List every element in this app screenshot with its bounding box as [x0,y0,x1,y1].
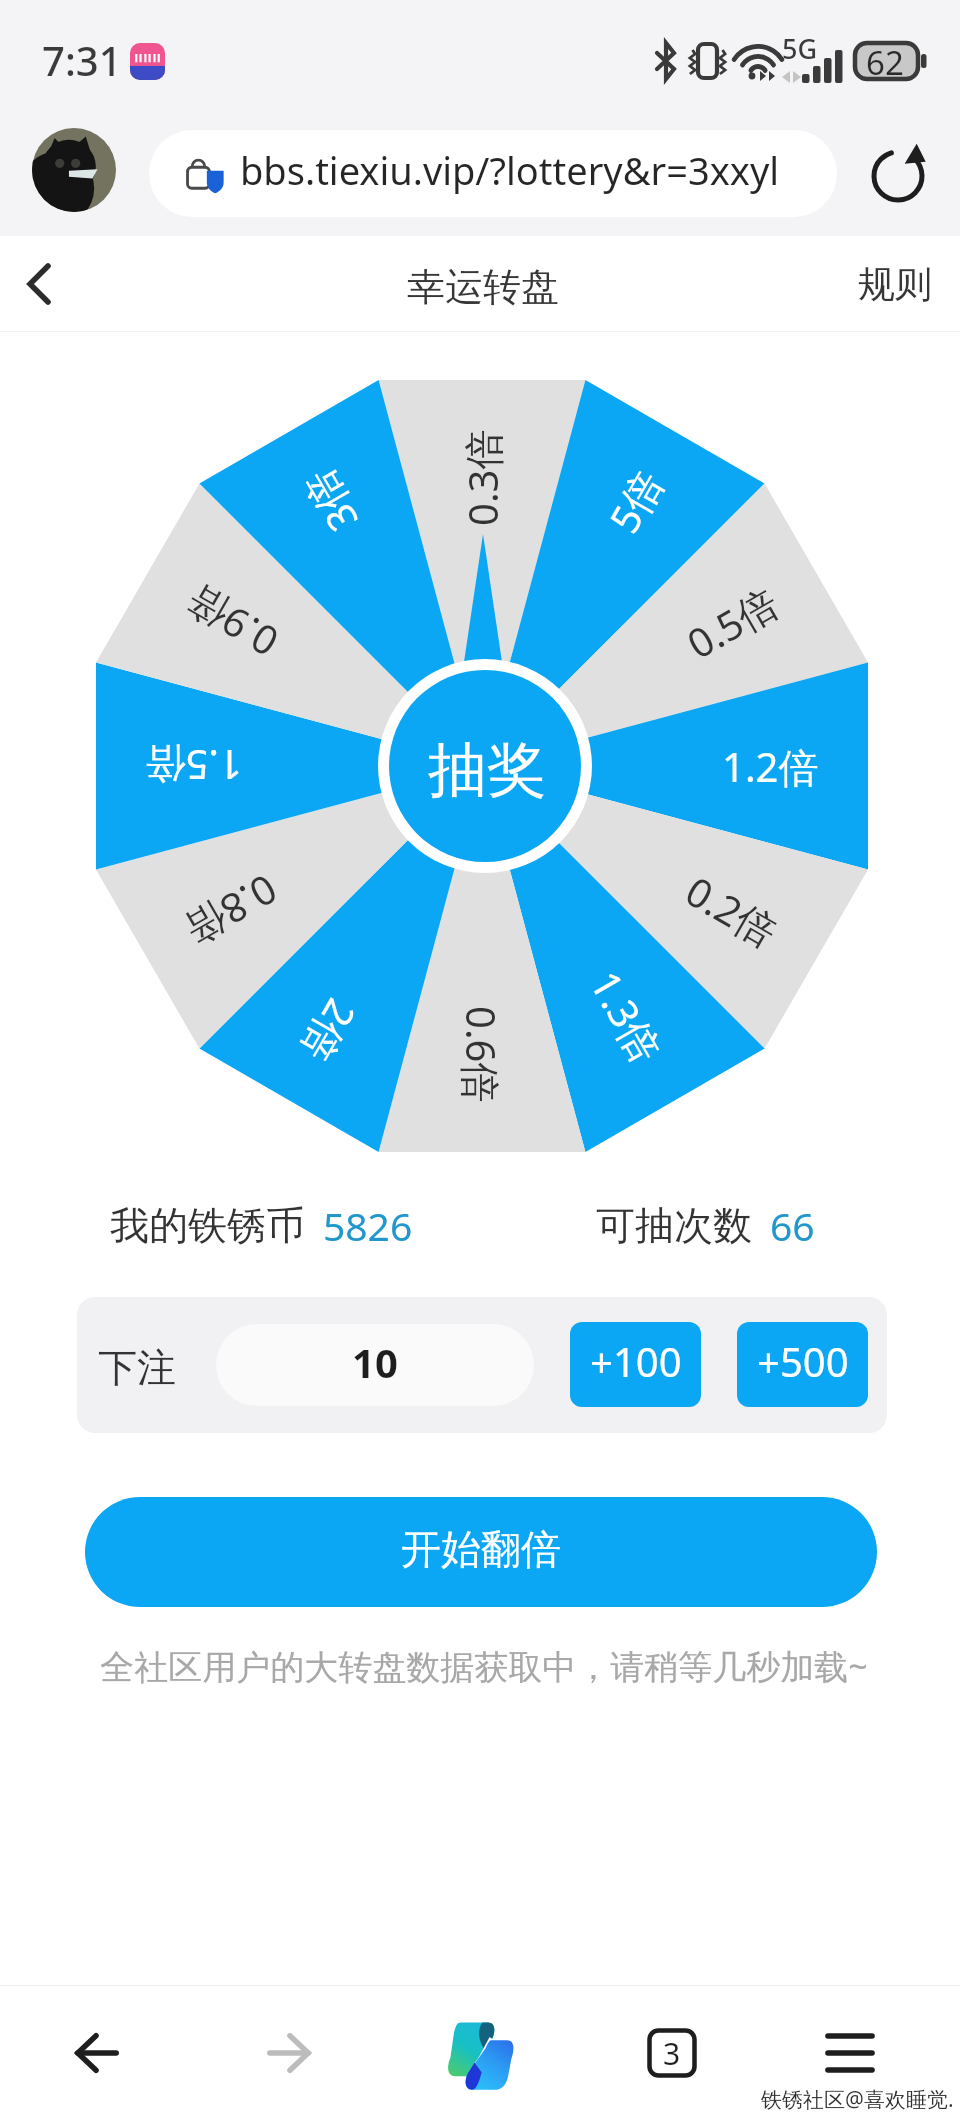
staticText: 0.5倍 [677,575,788,671]
staticText: 1.5倍 [145,738,242,793]
staticText: 全社区用户的大转盘数据获取中，请稍等几秒加载~ [100,1643,868,1689]
staticText: 7:31 [42,33,122,87]
button[interactable]: bbs.tiexiu.vip/?lottery&r=3xxyl [149,130,837,217]
button[interactable]: 抽奖 [389,670,581,862]
button[interactable]: Menu [802,2005,898,2101]
staticText: 66 [770,1199,815,1252]
staticText: 5826 [323,1199,413,1252]
staticText: 0.3倍 [455,429,510,526]
staticText: 2倍 [290,990,369,1072]
staticText: 1.3倍 [578,961,674,1072]
staticText: 铁锈社区@喜欢睡觉. [761,2085,954,2114]
staticText: 规则 [858,261,932,308]
staticText: 0.2倍 [676,863,788,959]
staticText: 5G [782,30,818,67]
button[interactable]: +100 [570,1322,701,1407]
button[interactable]: 开始翻倍 [85,1497,877,1607]
staticText: +100 [590,1334,682,1388]
staticText: 62 [866,40,904,85]
staticText: +500 [757,1334,849,1388]
button[interactable]: Reload [862,140,934,212]
staticText: 0.9倍 [176,574,288,670]
staticText: 开始翻倍 [401,1524,561,1574]
button[interactable]: Back [0,238,80,330]
button[interactable]: Tabs [624,2005,720,2101]
button[interactable]: +500 [737,1322,868,1407]
staticText: 抽奖 [428,733,546,807]
button[interactable]: 10 [216,1324,534,1406]
staticText: 0.6倍 [454,1006,509,1103]
button[interactable]: Forward [241,2005,337,2101]
staticText: 可抽次数 [596,1201,752,1250]
button[interactable]: Copilot [440,2013,520,2093]
staticText: 5倍 [596,460,675,542]
staticText: 幸运转盘 [407,263,559,311]
button[interactable]: Profile [32,128,116,212]
staticText: 3倍 [291,460,370,542]
staticText: 3 [663,2033,681,2074]
staticText: 下注 [98,1343,176,1392]
staticText: 我的铁锈币 [110,1201,305,1250]
button[interactable]: Back [49,2005,145,2101]
staticText: 10 [352,1335,398,1389]
staticText: 0.8倍 [176,862,287,958]
staticText: 1.2倍 [722,739,819,794]
button[interactable]: 规则 [840,238,950,330]
staticText: bbs.tiexiu.vip/?lottery&r=3xxyl [240,144,780,196]
